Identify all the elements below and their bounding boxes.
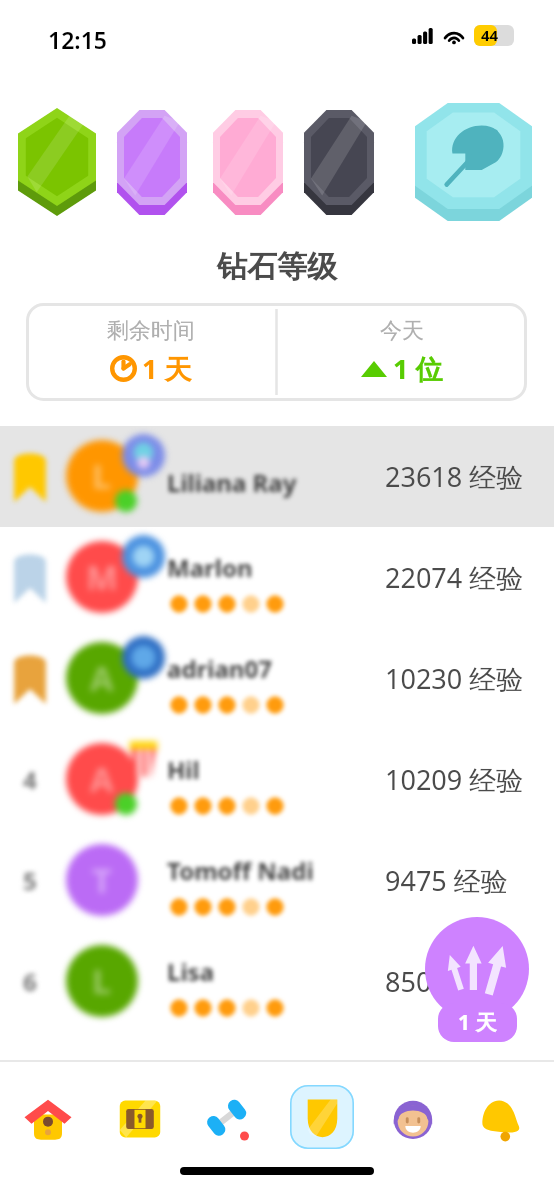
staticText: 1 天	[142, 350, 192, 387]
button[interactable]: 4	[0, 729, 554, 830]
button[interactable]: Streak boost	[425, 917, 529, 1021]
staticText: L	[92, 958, 112, 1004]
staticText: 1 位	[393, 350, 443, 387]
staticText: 10209 经验	[385, 761, 524, 798]
button[interactable]: 今天	[276, 303, 527, 401]
staticText: 44	[481, 25, 499, 45]
staticText: A	[90, 655, 114, 701]
button[interactable]: M	[0, 527, 554, 628]
staticText: 23618 经验	[385, 458, 524, 495]
button[interactable]: Treasure chest	[108, 1087, 172, 1151]
staticText: 1 天	[458, 1008, 497, 1037]
staticText: 9475 经验	[385, 862, 508, 899]
staticText: Lisa	[167, 955, 215, 988]
staticText: 4	[23, 763, 37, 796]
staticText: 22074 经验	[385, 559, 524, 596]
staticText: M	[86, 554, 119, 600]
staticText: Hil	[167, 753, 200, 786]
staticText: Liliana Ray	[167, 466, 297, 499]
staticText: 钻石等级	[0, 248, 554, 286]
staticText: A	[90, 756, 114, 802]
staticText: 8500 经验	[385, 963, 508, 1000]
staticText: Tomoff Nadi	[167, 854, 314, 887]
button[interactable]: Notifications	[468, 1087, 532, 1151]
staticText: T	[92, 857, 112, 903]
staticText: 今天	[380, 317, 424, 345]
staticText: adrian07	[167, 652, 272, 685]
button[interactable]: 6	[0, 931, 554, 1032]
button[interactable]: Practice	[196, 1087, 260, 1151]
button[interactable]: 5	[0, 830, 554, 931]
button[interactable]: L	[0, 426, 554, 527]
staticText: 12:15	[48, 24, 107, 55]
staticText: 6	[23, 965, 37, 998]
staticText: Marlon	[167, 551, 253, 584]
staticText: 剩余时间	[107, 317, 195, 345]
button[interactable]: Leaderboard	[290, 1085, 354, 1149]
button[interactable]: Home	[16, 1087, 80, 1151]
staticText: 10230 经验	[385, 660, 524, 697]
button[interactable]: A	[0, 628, 554, 729]
button[interactable]: Profile	[381, 1087, 445, 1151]
staticText: 5	[23, 864, 37, 897]
button[interactable]: 剩余时间	[26, 303, 276, 401]
staticText: L	[92, 453, 112, 499]
